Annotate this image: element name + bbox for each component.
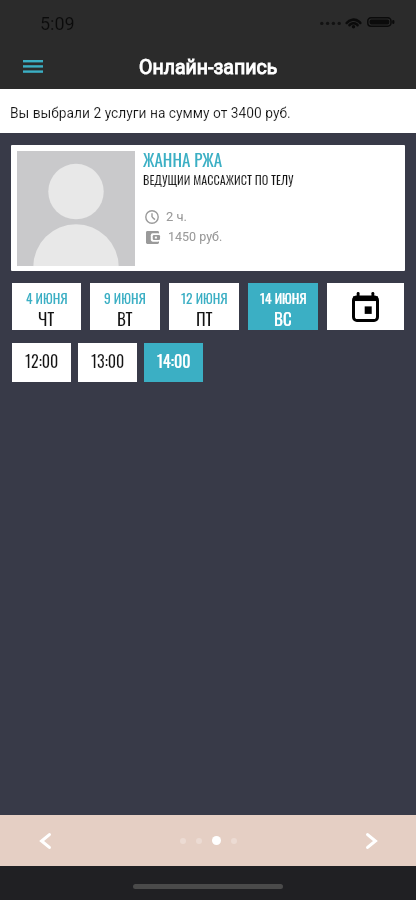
staticText: ВТ (117, 306, 133, 331)
staticText: 1450 руб. (168, 229, 223, 244)
staticText: ЧТ (38, 306, 55, 331)
button[interactable]: Previous (26, 822, 64, 860)
staticText: 14:00 (157, 349, 191, 373)
button[interactable]: Menu (11, 44, 54, 89)
staticText: 2 ч. (166, 209, 188, 224)
button[interactable]: 9 ИЮНЯ (90, 283, 160, 330)
staticText: 14 ИЮНЯ (260, 288, 307, 308)
staticText: ВЕДУЩИИ МАССАЖИСТ ПО ТЕЛУ (143, 170, 294, 188)
staticText: ПТ (196, 306, 213, 331)
button[interactable]: 14:00 (144, 343, 203, 382)
staticText: 5:09 (40, 13, 75, 34)
staticText: ВС (274, 306, 292, 331)
staticText: 9 ИЮНЯ (104, 288, 146, 308)
staticText: Вы выбрали 2 услуги на сумму от 3400 руб… (10, 105, 291, 121)
button[interactable]: 14 ИЮНЯ (248, 283, 318, 330)
staticText: ЖАННА РЖА (143, 147, 223, 172)
staticText: 4 ИЮНЯ (26, 288, 68, 308)
staticText: 13:00 (91, 349, 125, 373)
button[interactable]: Choose date (327, 283, 404, 330)
staticText: Онлайн-запись (139, 56, 278, 79)
button[interactable]: 4 ИЮНЯ (12, 283, 81, 330)
button[interactable]: ЖАННА РЖА (11, 145, 405, 271)
staticText: 12:00 (25, 349, 59, 373)
staticText: 12 ИЮНЯ (181, 288, 228, 308)
button[interactable]: 12:00 (12, 343, 71, 382)
button[interactable]: 12 ИЮНЯ (169, 283, 239, 330)
button[interactable]: 13:00 (78, 343, 137, 382)
button[interactable]: Next (352, 822, 390, 860)
